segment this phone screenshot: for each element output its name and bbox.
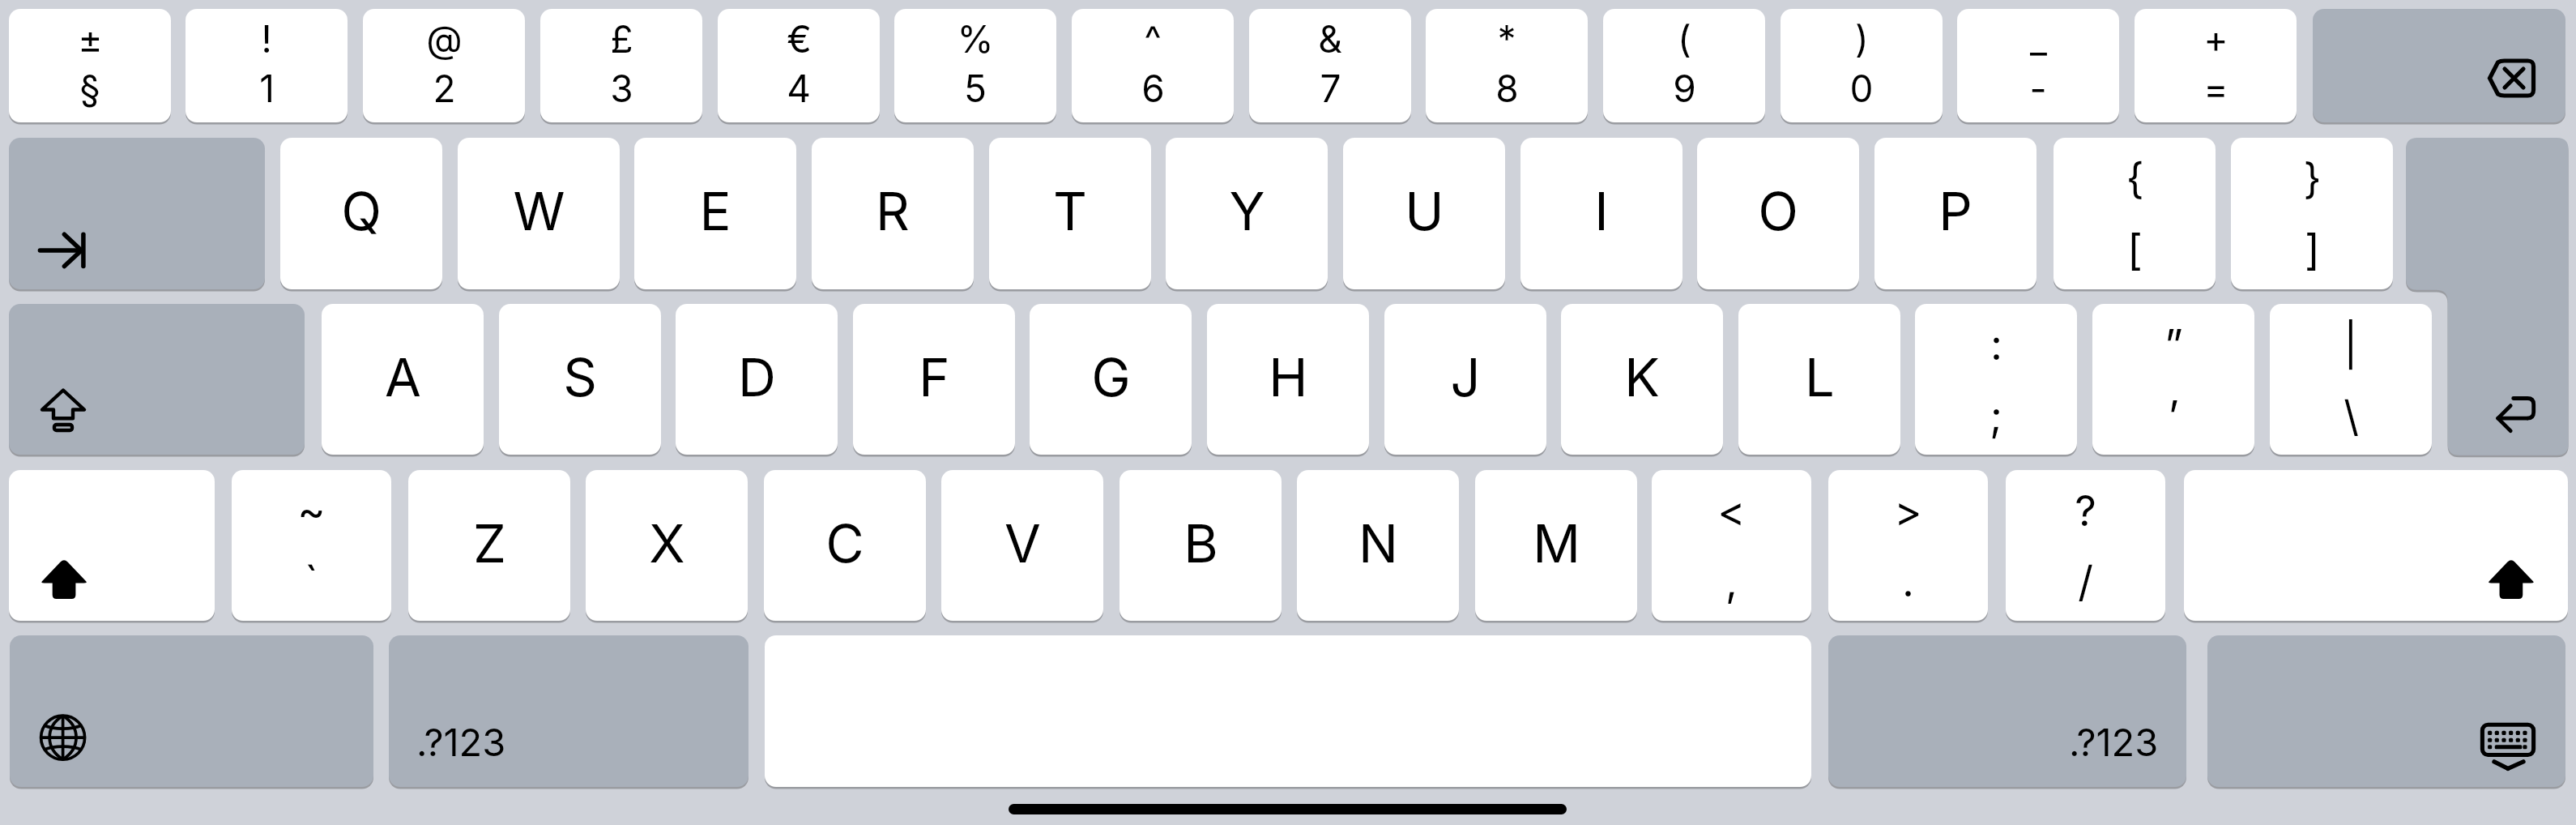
button[interactable]: E bbox=[634, 138, 796, 289]
staticText: * bbox=[1497, 16, 1516, 62]
button[interactable]: ) bbox=[1781, 9, 1943, 122]
staticText: 9 bbox=[1673, 66, 1696, 111]
button[interactable]: Hide keyboard bbox=[2207, 635, 2565, 787]
button[interactable]: Y bbox=[1166, 138, 1328, 289]
staticText: 3 bbox=[610, 66, 633, 111]
button[interactable]: A bbox=[322, 304, 484, 455]
button[interactable]: } bbox=[2231, 138, 2393, 289]
staticText: @ bbox=[426, 16, 463, 62]
button[interactable]: Return bbox=[2406, 138, 2569, 455]
button[interactable]: Space bbox=[765, 635, 1811, 787]
staticText: 4 bbox=[787, 66, 811, 111]
button[interactable]: : bbox=[1915, 304, 2077, 455]
button[interactable]: W bbox=[458, 138, 620, 289]
button[interactable]: L bbox=[1738, 304, 1900, 455]
staticText: ! bbox=[261, 16, 272, 62]
staticText: 2 bbox=[433, 66, 456, 111]
button[interactable]: Next keyboard bbox=[10, 635, 373, 787]
staticText: H bbox=[1269, 345, 1308, 409]
button[interactable]: ± bbox=[9, 9, 171, 122]
button[interactable]: * bbox=[1426, 9, 1588, 122]
staticText: I bbox=[1594, 179, 1609, 243]
button[interactable]: { bbox=[2054, 138, 2216, 289]
staticText: ± bbox=[78, 16, 103, 62]
staticText: ) bbox=[1855, 16, 1869, 62]
button[interactable]: S bbox=[499, 304, 661, 455]
staticText: 5 bbox=[964, 66, 987, 111]
button[interactable]: J bbox=[1384, 304, 1546, 455]
button[interactable]: Shift bbox=[2184, 470, 2568, 621]
button[interactable]: > bbox=[1828, 470, 1988, 621]
button[interactable]: Z bbox=[408, 470, 570, 621]
staticText: ; bbox=[1990, 391, 2002, 442]
button[interactable]: < bbox=[1652, 470, 1811, 621]
staticText: T bbox=[1053, 179, 1087, 243]
button[interactable]: K bbox=[1561, 304, 1723, 455]
button[interactable]: P bbox=[1874, 138, 2036, 289]
button[interactable]: C bbox=[764, 470, 926, 621]
staticText: G bbox=[1091, 345, 1131, 409]
staticText: E bbox=[699, 179, 731, 243]
button[interactable]: € bbox=[718, 9, 880, 122]
button[interactable]: H bbox=[1207, 304, 1369, 455]
staticText: S bbox=[563, 345, 597, 409]
staticText: 1 bbox=[259, 66, 275, 111]
staticText: Z bbox=[473, 511, 506, 575]
button[interactable]: ? bbox=[2006, 470, 2165, 621]
button[interactable]: D bbox=[676, 304, 838, 455]
button[interactable]: T bbox=[989, 138, 1151, 289]
staticText: D bbox=[738, 345, 776, 409]
button[interactable]: Caps lock bbox=[9, 304, 305, 455]
staticText: } bbox=[2303, 153, 2322, 204]
staticText: 6 bbox=[1141, 66, 1165, 111]
button[interactable]: N bbox=[1297, 470, 1459, 621]
button[interactable]: B bbox=[1120, 470, 1282, 621]
staticText: & bbox=[1318, 16, 1342, 62]
staticText: ( bbox=[1678, 16, 1691, 62]
staticText: = bbox=[2203, 66, 2228, 111]
staticText: B bbox=[1184, 511, 1218, 575]
button[interactable]: @ bbox=[363, 9, 525, 122]
button[interactable]: R bbox=[812, 138, 974, 289]
staticText: : bbox=[1990, 319, 2002, 370]
button[interactable]: Q bbox=[280, 138, 442, 289]
staticText: U bbox=[1405, 179, 1444, 243]
button[interactable]: Shift bbox=[9, 470, 215, 621]
staticText: J bbox=[1450, 345, 1481, 409]
staticText: + bbox=[2203, 16, 2228, 62]
staticText: N bbox=[1358, 511, 1398, 575]
button[interactable]: X bbox=[586, 470, 748, 621]
button[interactable]: ( bbox=[1603, 9, 1765, 122]
staticText: L bbox=[1805, 345, 1835, 409]
button[interactable]: | bbox=[2270, 304, 2432, 455]
button[interactable]: ” bbox=[2092, 304, 2254, 455]
button[interactable]: .?123 bbox=[389, 635, 748, 787]
staticText: .?123 bbox=[416, 719, 506, 765]
button[interactable]: M bbox=[1475, 470, 1637, 621]
button[interactable]: £ bbox=[540, 9, 702, 122]
staticText: _ bbox=[2030, 16, 2047, 62]
button[interactable]: & bbox=[1249, 9, 1411, 122]
button[interactable]: I bbox=[1520, 138, 1683, 289]
button[interactable]: Tab bbox=[9, 138, 265, 289]
button[interactable]: F bbox=[853, 304, 1015, 455]
button[interactable]: V bbox=[941, 470, 1103, 621]
staticText: / bbox=[2078, 556, 2093, 607]
staticText: R bbox=[876, 179, 910, 243]
button[interactable]: U bbox=[1343, 138, 1505, 289]
button[interactable]: % bbox=[894, 9, 1056, 122]
button[interactable]: ! bbox=[186, 9, 348, 122]
button[interactable]: + bbox=[2135, 9, 2297, 122]
staticText: K bbox=[1624, 345, 1660, 409]
button[interactable]: O bbox=[1697, 138, 1859, 289]
button[interactable]: .?123 bbox=[1828, 635, 2186, 787]
staticText: ’ bbox=[2168, 391, 2179, 442]
staticText: { bbox=[2126, 153, 2144, 204]
button[interactable]: _ bbox=[1957, 9, 2119, 122]
button[interactable]: ^ bbox=[1072, 9, 1234, 122]
staticText: , bbox=[1725, 556, 1738, 607]
button[interactable]: ~ bbox=[232, 470, 391, 621]
button[interactable]: Backspace bbox=[2313, 9, 2565, 122]
staticText: Y bbox=[1229, 179, 1265, 243]
button[interactable]: G bbox=[1030, 304, 1192, 455]
